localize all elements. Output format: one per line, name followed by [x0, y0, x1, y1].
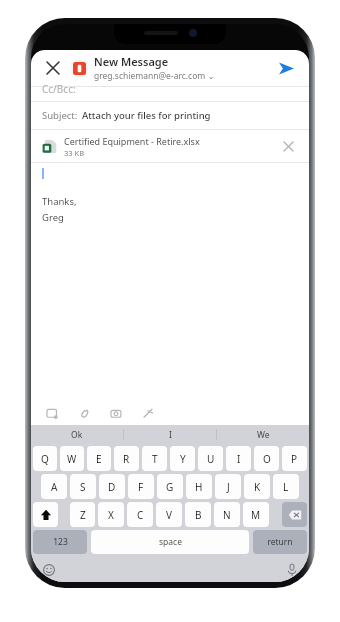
- staticText: O: [263, 452, 271, 466]
- button[interactable]: Ok: [31, 425, 123, 444]
- button[interactable]: Emoji: [40, 561, 57, 578]
- button[interactable]: Close: [40, 55, 66, 81]
- staticText: Certified Equipment - Retire.xlsx: [64, 135, 200, 147]
- staticText: D: [108, 480, 116, 494]
- staticText: Ok: [71, 429, 83, 441]
- staticText: Cc/Bcc:: [42, 82, 76, 96]
- staticText: Z: [80, 508, 86, 522]
- staticText: Y: [180, 452, 186, 466]
- staticText: U: [207, 452, 215, 466]
- button[interactable]: C: [127, 502, 153, 527]
- staticText: M: [251, 508, 261, 522]
- button[interactable]: Q: [33, 446, 57, 471]
- button[interactable]: H: [186, 474, 212, 499]
- staticText: R: [123, 452, 130, 466]
- button[interactable]: space: [91, 530, 249, 554]
- staticText: return: [267, 536, 293, 548]
- button[interactable]: O: [254, 446, 279, 471]
- button[interactable]: V: [156, 502, 182, 527]
- button[interactable]: M: [243, 502, 269, 527]
- button[interactable]: L: [273, 474, 299, 499]
- button[interactable]: 123: [33, 530, 87, 554]
- staticText: space: [159, 536, 182, 548]
- button[interactable]: T: [142, 446, 167, 471]
- button[interactable]: X: [98, 502, 124, 527]
- button[interactable]: G: [157, 474, 183, 499]
- staticText: S: [80, 480, 86, 494]
- staticText: Thanks,: [42, 195, 77, 208]
- button[interactable]: P: [282, 446, 307, 471]
- button[interactable]: Y: [170, 446, 195, 471]
- button[interactable]: D: [99, 474, 125, 499]
- staticText: V: [166, 508, 172, 522]
- staticText: I: [169, 429, 172, 441]
- staticText: Q: [41, 452, 49, 466]
- staticText: Attach your files for printing: [82, 109, 211, 122]
- button[interactable]: Send: [272, 54, 300, 82]
- staticText: We: [257, 429, 270, 441]
- staticText: Greg: [42, 211, 64, 224]
- button[interactable]: K: [244, 474, 270, 499]
- button[interactable]: B: [185, 502, 211, 527]
- staticText: F: [138, 480, 144, 494]
- button[interactable]: Z: [70, 502, 95, 527]
- button[interactable]: I: [124, 425, 216, 444]
- button[interactable]: Draw: [139, 404, 157, 422]
- staticText: 123: [53, 536, 68, 548]
- staticText: H: [195, 480, 203, 494]
- staticText: K: [254, 480, 261, 494]
- staticText: New Message: [94, 54, 169, 69]
- button[interactable]: return: [253, 530, 307, 554]
- staticText: E: [96, 452, 102, 466]
- button[interactable]: Certified Equipment - Retire.xlsx: [42, 130, 298, 162]
- button[interactable]: Dictation: [283, 561, 300, 578]
- button[interactable]: U: [198, 446, 223, 471]
- button[interactable]: I: [226, 446, 251, 471]
- staticText: B: [195, 508, 202, 522]
- button[interactable]: F: [128, 474, 154, 499]
- staticText: J: [227, 480, 230, 494]
- staticText: N: [223, 508, 231, 522]
- button[interactable]: A: [41, 474, 67, 499]
- button[interactable]: S: [70, 474, 96, 499]
- button[interactable]: We: [217, 425, 309, 444]
- button[interactable]: Remove attachment: [278, 136, 298, 156]
- button[interactable]: Backspace: [282, 502, 307, 527]
- button[interactable]: Take photo: [107, 404, 125, 422]
- staticText: A: [51, 480, 58, 494]
- button[interactable]: Insert picture: [43, 404, 61, 422]
- button[interactable]: E: [87, 446, 111, 471]
- staticText: 33 KB: [64, 148, 85, 158]
- staticText: W: [67, 452, 77, 466]
- button[interactable]: W: [60, 446, 84, 471]
- button[interactable]: N: [214, 502, 240, 527]
- button[interactable]: Shift: [33, 502, 58, 527]
- staticText: T: [152, 452, 158, 466]
- staticText: L: [283, 480, 289, 494]
- staticText: greg.schiemann@e-arc.com ⌄: [94, 70, 215, 82]
- button[interactable]: Subject:: [42, 102, 298, 129]
- staticText: G: [166, 480, 174, 494]
- button[interactable]: Attach file: [75, 404, 93, 422]
- button[interactable]: R: [114, 446, 139, 471]
- staticText: X: [108, 508, 114, 522]
- staticText: Subject:: [42, 109, 78, 122]
- button[interactable]: J: [215, 474, 241, 499]
- staticText: C: [137, 508, 144, 522]
- staticText: P: [291, 452, 298, 466]
- staticText: I: [237, 452, 241, 466]
